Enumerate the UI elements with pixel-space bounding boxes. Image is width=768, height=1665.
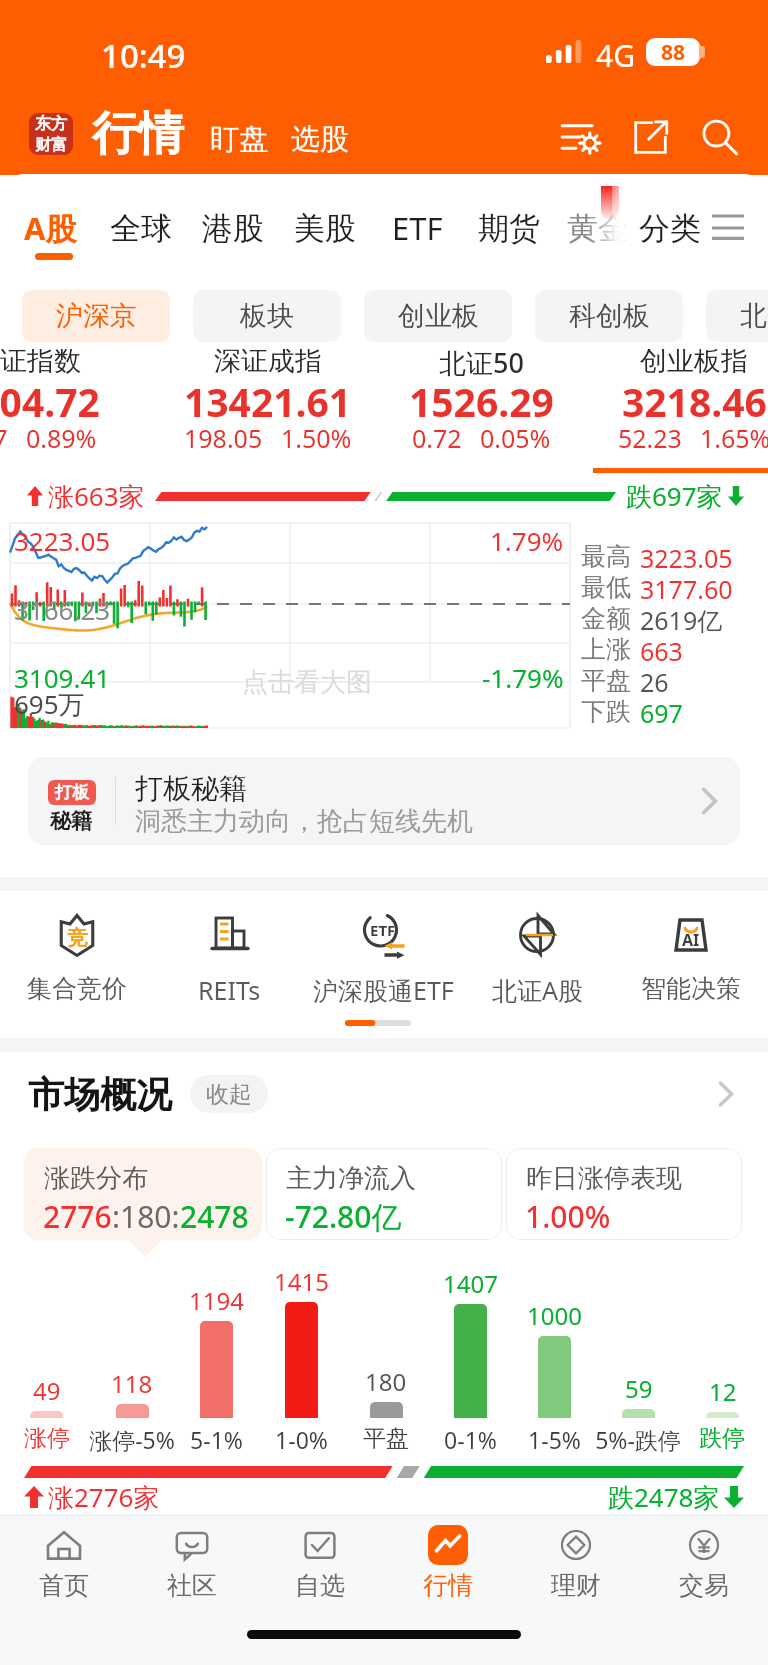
staticText: 北交所 [740,299,768,333]
button[interactable]: 收起 [190,1075,268,1113]
staticText: 跌停 [699,1424,745,1453]
staticText: 下跌 [581,696,631,727]
button[interactable]: ETF [306,909,460,1007]
staticText: 5%-跌停 [595,1424,681,1455]
staticText: 洞悉主力动向，抢占短线先机 [135,805,473,838]
staticText: 1194 [189,1284,244,1317]
button[interactable]: More tabs [702,199,754,257]
button[interactable]: 全球 [95,199,187,257]
button[interactable]: Share [621,108,679,166]
button[interactable]: 美股 [279,199,371,257]
button[interactable]: 北交所 [706,290,768,342]
button[interactable]: 港股 [187,199,279,257]
staticText: 52.23 [618,421,682,455]
staticText: 涨663家 [48,478,145,514]
staticText: 涨停 [24,1424,70,1453]
staticText: 金额 [581,603,631,634]
staticText: 1.65% [700,421,768,455]
button[interactable]: REITs [153,909,306,1007]
button[interactable]: Search [690,108,748,166]
staticText: 平盘 [581,665,631,696]
staticText: 0.05% [480,421,551,455]
button[interactable]: 沪深京 [22,290,170,342]
staticText: 社区 [167,1570,217,1601]
staticText: AI [682,929,700,951]
button[interactable]: 创业板指 [584,349,768,477]
staticText: 3177.60 [640,572,733,606]
staticText: 期货 [478,209,540,248]
button[interactable]: A股 [4,199,96,257]
staticText: 涨跌分布 [44,1162,148,1195]
staticText: 涨2776家 [48,1479,160,1514]
staticText: :180: [112,1196,180,1237]
staticText: 黄金 [567,209,629,248]
staticText: 1000 [527,1299,582,1332]
button[interactable]: 深证成指 [158,349,378,477]
button[interactable]: 创业板 [364,290,512,342]
staticText: 1415 [274,1265,329,1298]
staticText: 收起 [206,1080,252,1109]
staticText: 竞 [67,925,88,951]
button[interactable]: 板块 [193,290,341,342]
button[interactable]: 分类 [628,199,712,257]
staticText: ETF [392,207,443,249]
staticText: 1.50% [281,421,352,455]
staticText: 打板 [55,782,89,803]
staticText: 涨停-5% [89,1424,175,1455]
staticText: 深证成指 [214,349,322,378]
staticText: 最低 [581,572,631,603]
button[interactable]: ETF [371,199,463,257]
staticText: 697 [640,696,683,730]
staticText: 理财 [551,1570,601,1601]
staticText: 东方 [35,114,67,134]
staticText: 59 [625,1372,653,1405]
button[interactable]: 黄金 [552,199,644,257]
staticText: 主力净流入 [286,1162,416,1195]
button[interactable]: AI [614,909,768,1004]
button[interactable]: 北证50 [371,349,591,477]
button[interactable]: 期货 [463,199,555,257]
staticText: 上涨 [581,634,631,665]
staticText: -72.80亿 [285,1196,402,1237]
staticText: 180 [365,1365,407,1398]
button[interactable]: 打板 [28,757,740,845]
staticText: 沪深京 [56,299,137,333]
staticText: 118 [111,1367,153,1400]
staticText: 1.79% [490,523,564,558]
staticText: 695万 [14,686,85,722]
button[interactable]: 交易 [640,1516,768,1604]
staticText: 秘籍 [50,808,92,834]
button[interactable]: List settings [552,108,610,166]
staticText: 3109.41 [14,660,111,695]
button[interactable]: More market info [706,1074,746,1114]
button[interactable]: 北证A股 [460,909,614,1007]
button[interactable]: 行情 [384,1516,512,1604]
staticText: 2776 [43,1196,112,1237]
staticText: A股 [24,207,77,249]
staticText: 盯盘 [210,121,268,158]
button[interactable]: 社区 [128,1516,256,1604]
staticText: 4004.72 [0,375,100,428]
staticText: 分类 [639,209,701,248]
staticText: 2478 [180,1196,249,1237]
button[interactable]: 自选 [256,1516,384,1604]
button[interactable]: 3223.05 [10,523,570,728]
button[interactable]: 上证指数 [0,349,137,477]
staticText: 最高 [581,541,631,572]
staticText: 198.05 [184,421,263,455]
button[interactable]: 首页 [0,1516,128,1604]
staticText: 5-1% [190,1424,243,1455]
button[interactable]: 盯盘 [205,118,273,160]
staticText: 1526.29 [409,375,554,428]
staticText: 0.72 [412,421,462,455]
staticText: 板块 [240,299,294,333]
button[interactable]: 主力净流入 [266,1148,502,1240]
staticText: 5.47 [0,421,8,455]
button[interactable]: 选股 [286,118,354,160]
button[interactable]: 涨跌分布 [24,1148,262,1240]
button[interactable]: 理财 [512,1516,640,1604]
staticText: 上证指数 [0,349,81,378]
button[interactable]: 竞 [0,909,153,1004]
button[interactable]: 昨日涨停表现 [506,1148,742,1240]
button[interactable]: 科创板 [535,290,683,342]
